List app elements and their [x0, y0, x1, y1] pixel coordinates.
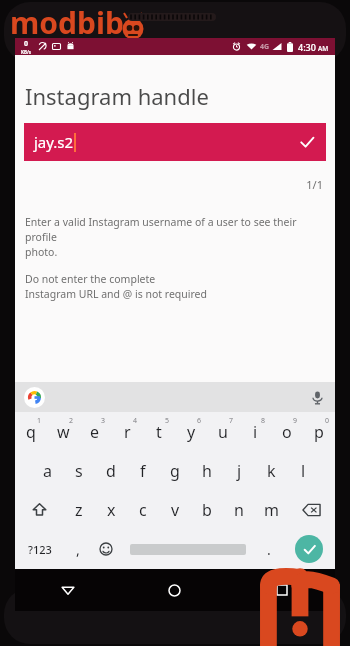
button[interactable]: Voice input [310, 390, 325, 405]
staticText: jay.s2 [34, 132, 74, 152]
staticText: m [264, 499, 279, 521]
button[interactable]: Enter [283, 529, 335, 569]
staticText: f [140, 460, 146, 482]
staticText: z [75, 499, 83, 521]
staticText: j [237, 460, 242, 482]
button[interactable]: r [111, 412, 143, 451]
staticText: . [267, 540, 271, 559]
button[interactable]: s [63, 451, 95, 490]
staticText: l [301, 460, 306, 482]
staticText: 8 [261, 416, 266, 426]
button[interactable]: w [47, 412, 79, 451]
staticText: p [314, 421, 324, 443]
staticText: s [75, 460, 83, 482]
staticText: w [57, 421, 70, 443]
staticText: e [90, 421, 100, 443]
button[interactable]: jay.s2 [24, 123, 326, 161]
staticText: 1/1 [15, 177, 323, 192]
staticText: AM [318, 44, 329, 53]
staticText: modbib [10, 2, 124, 43]
button[interactable]: v [159, 490, 191, 529]
staticText: h [202, 460, 212, 482]
staticText: 9 [293, 416, 298, 426]
staticText: 0 [325, 416, 330, 426]
staticText: q [26, 421, 36, 443]
staticText: i [253, 421, 258, 443]
staticText: Do not enter the complete Instagram URL … [25, 272, 207, 301]
staticText: 4:30 [298, 41, 316, 53]
button[interactable]: k [255, 451, 287, 490]
button[interactable]: a [31, 451, 63, 490]
staticText: u [218, 421, 228, 443]
staticText: o [282, 421, 292, 443]
staticText: v [171, 499, 180, 521]
button[interactable]: n [223, 490, 255, 529]
staticText: 3 [101, 416, 106, 426]
button[interactable]: x [95, 490, 127, 529]
staticText: g [170, 460, 180, 482]
button[interactable]: f [127, 451, 159, 490]
staticText: k [267, 460, 276, 482]
button[interactable]: ?123 [15, 529, 64, 569]
button[interactable]: Backspace [287, 490, 335, 529]
button[interactable]: i [239, 412, 271, 451]
button[interactable]: t [143, 412, 175, 451]
staticText: 4G [260, 42, 270, 52]
staticText: KB/s [21, 49, 32, 55]
button[interactable]: Recents [228, 569, 335, 611]
button[interactable]: Space [120, 529, 255, 569]
staticText: ?123 [28, 542, 52, 557]
staticText: 2 [69, 416, 74, 426]
staticText: x [107, 499, 116, 521]
button[interactable]: l [287, 451, 319, 490]
staticText: 6 [197, 416, 202, 426]
button[interactable]: e [79, 412, 111, 451]
button[interactable]: c [127, 490, 159, 529]
button[interactable]: d [95, 451, 127, 490]
button[interactable]: Emoji [92, 529, 120, 569]
staticText: y [187, 421, 196, 443]
staticText: d [106, 460, 116, 482]
button[interactable]: u [207, 412, 239, 451]
button[interactable]: p [303, 412, 335, 451]
staticText: n [234, 499, 244, 521]
staticText: r [124, 421, 131, 443]
button[interactable]: z [63, 490, 95, 529]
staticText: 1 [37, 416, 42, 426]
button[interactable]: Shift [15, 490, 63, 529]
button[interactable]: Confirm handle [298, 133, 316, 151]
button[interactable]: y [175, 412, 207, 451]
button[interactable]: q [15, 412, 47, 451]
staticText: Instagram handle [25, 81, 209, 111]
staticText: 4 [133, 416, 138, 426]
button[interactable]: Home [121, 569, 228, 611]
staticText: c [139, 499, 147, 521]
button[interactable]: g [159, 451, 191, 490]
button[interactable]: . [255, 529, 283, 569]
button[interactable]: j [223, 451, 255, 490]
staticText: 7 [229, 416, 234, 426]
button[interactable]: Google Search [24, 387, 45, 408]
button[interactable]: o [271, 412, 303, 451]
button[interactable]: m [255, 490, 287, 529]
staticText: 5 [165, 416, 170, 426]
button[interactable]: , [64, 529, 92, 569]
staticText: , [76, 540, 80, 559]
staticText: t [156, 421, 162, 443]
staticText: a [43, 460, 52, 482]
staticText: Enter a valid Instagram username of a us… [25, 215, 325, 259]
button[interactable]: h [191, 451, 223, 490]
button[interactable]: b [191, 490, 223, 529]
staticText: 0 [24, 39, 29, 49]
staticText: b [202, 499, 212, 521]
button[interactable]: Back [15, 569, 121, 611]
